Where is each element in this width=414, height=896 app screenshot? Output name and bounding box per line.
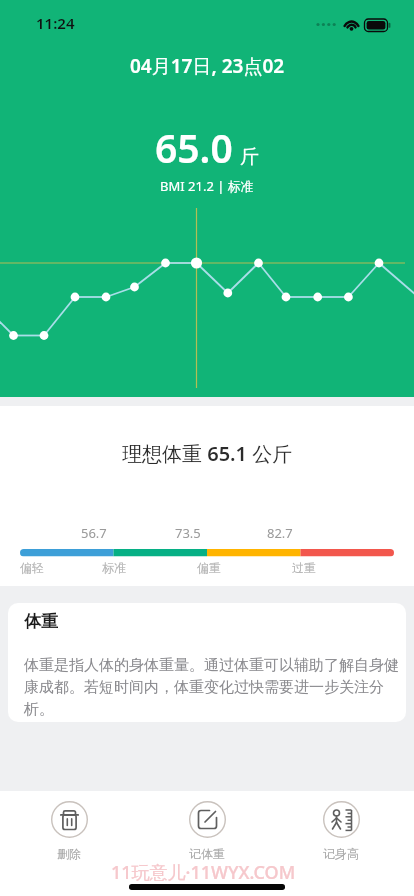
staticText: 体重是指人体的身体重量。通过体重可以辅助了解自身健 康成都。若短时间内，体重变化…	[24, 656, 399, 719]
staticText: 偏重	[197, 560, 221, 575]
staticText: 标准	[102, 560, 126, 575]
staticText: 82.7	[267, 524, 293, 542]
button[interactable]: 记体重	[173, 797, 241, 861]
staticText: 记身高	[323, 846, 359, 861]
button[interactable]: 记身高	[307, 797, 375, 861]
staticText: 斤	[240, 145, 259, 169]
staticText: 过重	[292, 560, 316, 575]
staticText: 65.0	[155, 121, 233, 174]
staticText: 删除	[57, 846, 81, 861]
button[interactable]: 体重	[8, 603, 406, 722]
staticText: 偏轻	[20, 560, 44, 575]
staticText: 11:24	[36, 13, 75, 33]
staticText: 11玩意儿·11WYX.COM	[111, 860, 296, 885]
staticText: 04月17日, 23点02	[130, 53, 285, 79]
staticText: 记体重	[189, 846, 225, 861]
staticText: BMI 21.2 | 标准	[160, 177, 254, 195]
staticText: 56.7	[81, 524, 107, 542]
staticText: 体重	[24, 611, 58, 632]
button[interactable]: 删除	[35, 797, 103, 861]
staticText: 73.5	[175, 524, 201, 542]
staticText: 理想体重 65.1 公斤	[122, 440, 293, 467]
